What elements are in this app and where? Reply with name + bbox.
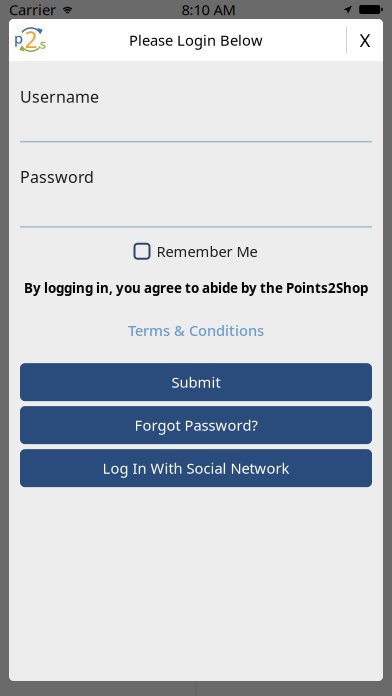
staticText: Remember Me <box>156 241 257 261</box>
staticText: s <box>40 35 46 52</box>
button[interactable]: Username <box>20 86 372 142</box>
staticText: Username <box>20 86 99 107</box>
button[interactable]: Password <box>20 166 372 227</box>
staticText: Terms & Conditions <box>128 321 264 340</box>
button[interactable]: Submit <box>20 363 372 401</box>
staticText: Carrier <box>9 0 56 19</box>
staticText: 2 <box>24 24 37 54</box>
staticText: Submit <box>171 372 220 392</box>
button[interactable]: Forgot Password? <box>20 406 372 444</box>
button[interactable]: Close <box>347 19 383 61</box>
staticText: Password <box>20 166 94 187</box>
button[interactable]: Terms & Conditions <box>128 321 264 340</box>
staticText: Forgot Password? <box>134 415 257 435</box>
staticText: 8:10 AM <box>181 0 235 19</box>
staticText: X <box>359 28 370 52</box>
button[interactable]: Log In With Social Network <box>20 449 372 487</box>
staticText: p <box>14 28 23 48</box>
staticText: By logging in, you agree to abide by the… <box>24 279 368 297</box>
button[interactable]: Remember Me <box>134 241 257 261</box>
staticText: Log In With Social Network <box>102 458 289 478</box>
staticText: Please Login Below <box>129 30 263 50</box>
